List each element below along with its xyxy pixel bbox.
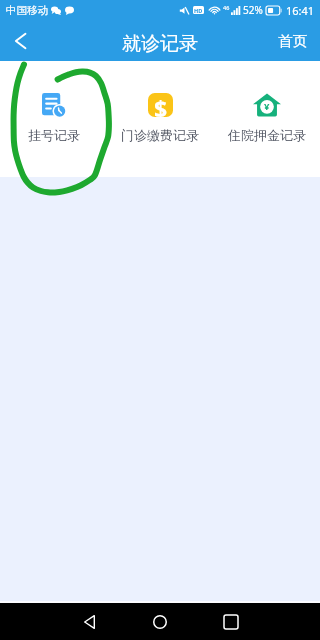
button[interactable]: Home bbox=[142, 604, 178, 640]
staticText: 门诊缴费记录 bbox=[121, 127, 199, 143]
staticText: 首页 bbox=[278, 32, 307, 50]
button[interactable]: ¥ bbox=[214, 61, 320, 143]
staticText: 中国移动 bbox=[6, 4, 48, 17]
button[interactable]: 首页 bbox=[264, 20, 320, 61]
button[interactable]: 挂号记录 bbox=[1, 61, 107, 143]
button[interactable]: Back bbox=[71, 604, 107, 640]
staticText: ¥ bbox=[264, 100, 270, 113]
button[interactable]: $ bbox=[107, 61, 213, 143]
staticText: 住院押金记录 bbox=[228, 127, 306, 143]
staticText: HD bbox=[194, 7, 203, 14]
staticText: 16:41 bbox=[286, 3, 315, 18]
staticText: $ bbox=[154, 93, 168, 117]
staticText: 46 bbox=[223, 4, 230, 11]
staticText: 52% bbox=[243, 3, 263, 17]
staticText: 挂号记录 bbox=[28, 127, 80, 143]
button[interactable]: Recents bbox=[213, 604, 249, 640]
staticText: 就诊记录 bbox=[122, 32, 198, 56]
button[interactable]: Back bbox=[0, 21, 40, 61]
